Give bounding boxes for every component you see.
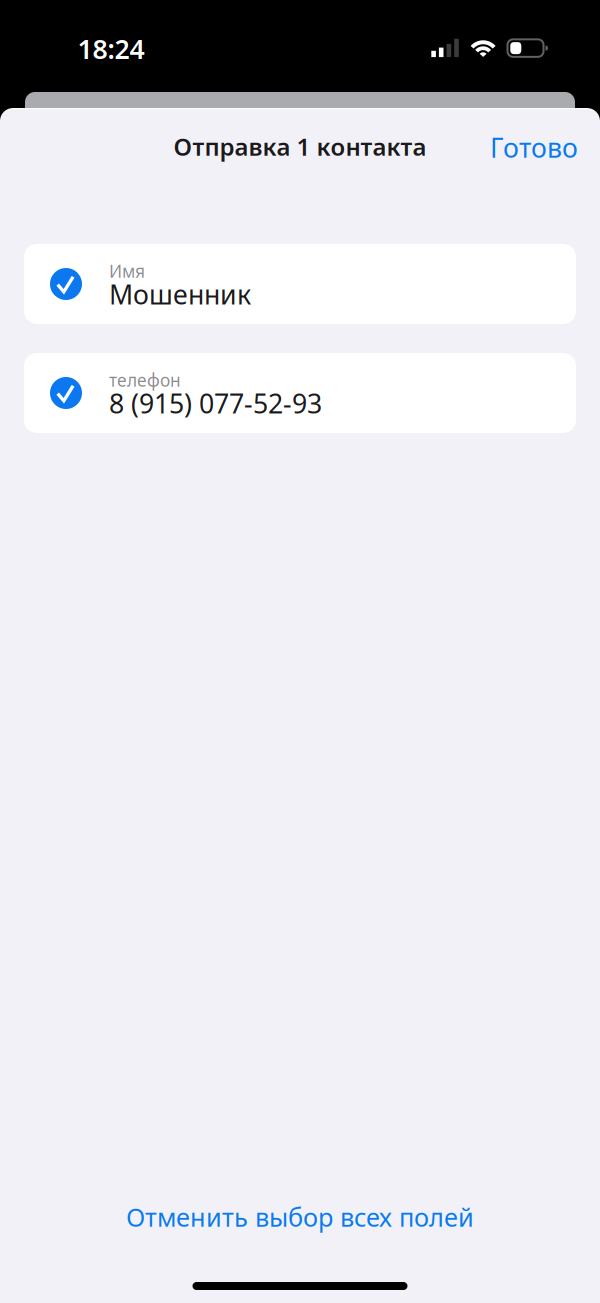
staticText: 18:24 [77,31,144,66]
staticText: Отправка 1 контакта [173,131,426,162]
button[interactable]: телефон: 8 (915) 077-52-93, выбрано [24,353,576,433]
staticText: 8 (915) 077-52-93 [109,385,322,421]
staticText: Мошенник [109,276,251,312]
staticText: телефон [109,368,181,391]
button[interactable]: Отменить выбор всех полей [0,1184,600,1236]
staticText: Имя [109,259,145,282]
button[interactable]: Имя: Мошенник, выбрано [24,244,576,324]
staticText: Готово [490,130,578,165]
button[interactable]: Готово [478,122,590,177]
staticText: Отменить выбор всех полей [126,1200,474,1234]
